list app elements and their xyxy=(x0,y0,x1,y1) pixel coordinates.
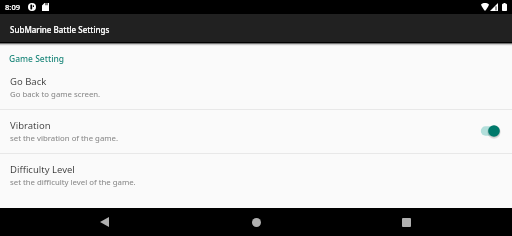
staticText: set the vibration of the game. xyxy=(10,133,119,144)
button[interactable]: Vibration xyxy=(0,110,512,153)
staticText: set the difficulty level of the game. xyxy=(10,177,136,188)
staticText: Difficulty Level xyxy=(10,163,75,176)
staticText: Game Setting xyxy=(9,53,65,65)
staticText: SubMarine Battle Settings xyxy=(10,24,110,35)
button[interactable]: Back xyxy=(90,208,118,236)
button[interactable]: Go Back xyxy=(0,66,512,109)
button[interactable]: Recent apps xyxy=(392,208,420,236)
staticText: Go back to game screen. xyxy=(10,89,101,100)
button[interactable]: Vibration toggle xyxy=(479,121,501,141)
button[interactable]: Difficulty Level xyxy=(0,154,512,197)
staticText: 8:09 xyxy=(5,2,21,12)
staticText: Vibration xyxy=(10,119,51,132)
staticText: Go Back xyxy=(10,75,47,88)
button[interactable]: Home xyxy=(242,208,270,236)
